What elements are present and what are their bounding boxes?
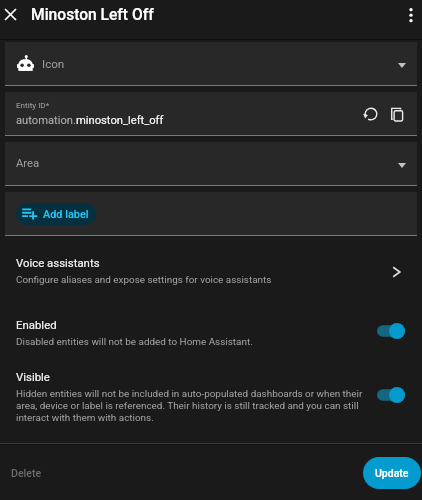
staticText: Visible	[16, 370, 50, 383]
staticText: Voice assistants	[16, 256, 100, 269]
staticText: Disabled entities will not be added to H…	[16, 336, 253, 348]
button[interactable]: More options	[396, 0, 422, 29]
staticText: automation.minoston_left_off	[16, 114, 164, 127]
staticText: Minoston Left Off	[31, 6, 154, 24]
staticText: Configure aliases and expose settings fo…	[16, 274, 272, 286]
button[interactable]: Voice assistants	[0, 242, 422, 308]
button[interactable]: Add label	[16, 203, 96, 225]
staticText: Entity ID*	[16, 100, 50, 109]
button[interactable]: Copy	[384, 101, 410, 127]
staticText: Add label	[43, 208, 89, 221]
staticText: Icon	[42, 57, 65, 71]
button[interactable]: Enabled	[0, 308, 422, 358]
button[interactable]: Delete	[4, 460, 49, 486]
button[interactable]: Restore	[358, 101, 384, 127]
staticText: Hidden entities will not be included in …	[16, 388, 374, 424]
staticText: Update	[375, 467, 409, 479]
staticText: Area	[16, 157, 40, 170]
staticText: Delete	[11, 467, 42, 479]
button[interactable]: Close	[0, 0, 25, 29]
staticText: Enabled	[16, 318, 57, 331]
button[interactable]: Visible	[0, 358, 422, 434]
button[interactable]: Update	[363, 457, 421, 489]
